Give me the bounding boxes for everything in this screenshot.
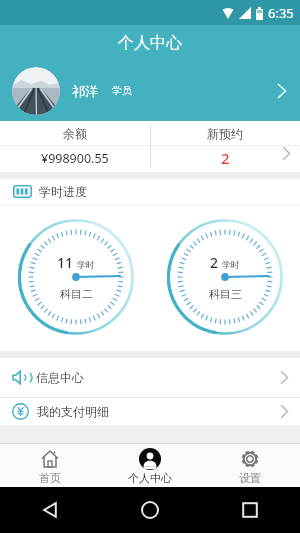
staticText: 科目二 [60,287,93,301]
staticText: ¥998900.55 [41,150,109,167]
staticText: 祁洋 [72,83,98,99]
staticText: 个人中心 [118,33,182,53]
staticText: 6:35 [268,4,294,22]
button[interactable]: 设置 [200,444,300,487]
staticText: 学时 [77,259,95,270]
button[interactable]: 祁洋 [0,60,300,121]
staticText: 新预约 [207,126,243,141]
button[interactable] [0,487,100,533]
button[interactable]: 首页 [0,444,100,487]
staticText: 科目三 [209,287,242,301]
staticText: 首页 [39,471,61,485]
staticText: 学时进度 [39,184,87,199]
button[interactable]: 个人中心 [100,444,200,487]
button[interactable] [200,487,300,533]
staticText: 设置 [239,471,261,485]
staticText: 信息中心 [36,370,84,385]
staticText: 学员 [112,84,132,97]
staticText: 学时 [222,259,240,270]
button[interactable]: 新预约 [150,121,300,172]
staticText: 2 [221,148,230,168]
button[interactable]: 余额 [0,121,150,172]
staticText: 我的支付明细 [37,404,109,419]
button[interactable]: 信息中心 [0,358,300,397]
staticText: 2 [210,253,219,272]
staticText: 余额 [63,126,87,141]
staticText: 11 [57,253,74,272]
button[interactable]: 我的支付明细 [0,398,300,425]
button[interactable] [100,487,200,533]
staticText: 个人中心 [128,471,172,485]
